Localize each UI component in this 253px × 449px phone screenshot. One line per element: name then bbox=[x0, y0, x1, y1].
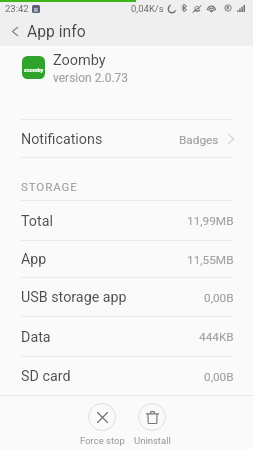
staticText: STORAGE bbox=[21, 180, 78, 193]
staticText: USB storage app bbox=[21, 289, 127, 306]
staticText: zoomby bbox=[24, 67, 44, 73]
staticText: App bbox=[21, 251, 47, 268]
staticText: 0,04K/s bbox=[131, 3, 164, 14]
button[interactable]: zoomby bbox=[0, 46, 253, 119]
staticText: 11,55MB bbox=[187, 253, 234, 267]
staticText: 0,00B bbox=[204, 370, 234, 384]
staticText: Data bbox=[21, 329, 51, 346]
staticText: Force stop bbox=[80, 435, 125, 446]
staticText: Uninstall bbox=[134, 435, 171, 446]
staticText: SD card bbox=[21, 368, 71, 385]
staticText: 11,99MB bbox=[187, 214, 234, 228]
button[interactable]: Uninstall bbox=[125, 399, 179, 449]
button[interactable]: SD card bbox=[0, 356, 253, 395]
staticText: 444KB bbox=[199, 330, 234, 344]
staticText: Zoomby bbox=[53, 52, 106, 69]
button[interactable]: Force stop bbox=[75, 399, 129, 449]
staticText: R bbox=[34, 6, 38, 13]
button[interactable]: Back bbox=[0, 15, 253, 46]
button[interactable]: Notifications bbox=[0, 119, 253, 158]
staticText: Total bbox=[21, 213, 53, 230]
staticText: Badges bbox=[179, 133, 219, 147]
other: Back bbox=[12, 27, 18, 36]
staticText: 23:42 bbox=[5, 3, 29, 14]
button[interactable]: Data bbox=[0, 316, 253, 356]
button[interactable]: App bbox=[0, 240, 253, 277]
staticText: Notifications bbox=[21, 131, 103, 148]
staticText: 0,00B bbox=[204, 291, 234, 305]
button[interactable]: Total bbox=[0, 200, 253, 240]
staticText: App info bbox=[27, 22, 86, 40]
button[interactable]: USB storage app bbox=[0, 277, 253, 316]
staticText: version 2.0.73 bbox=[53, 71, 129, 85]
